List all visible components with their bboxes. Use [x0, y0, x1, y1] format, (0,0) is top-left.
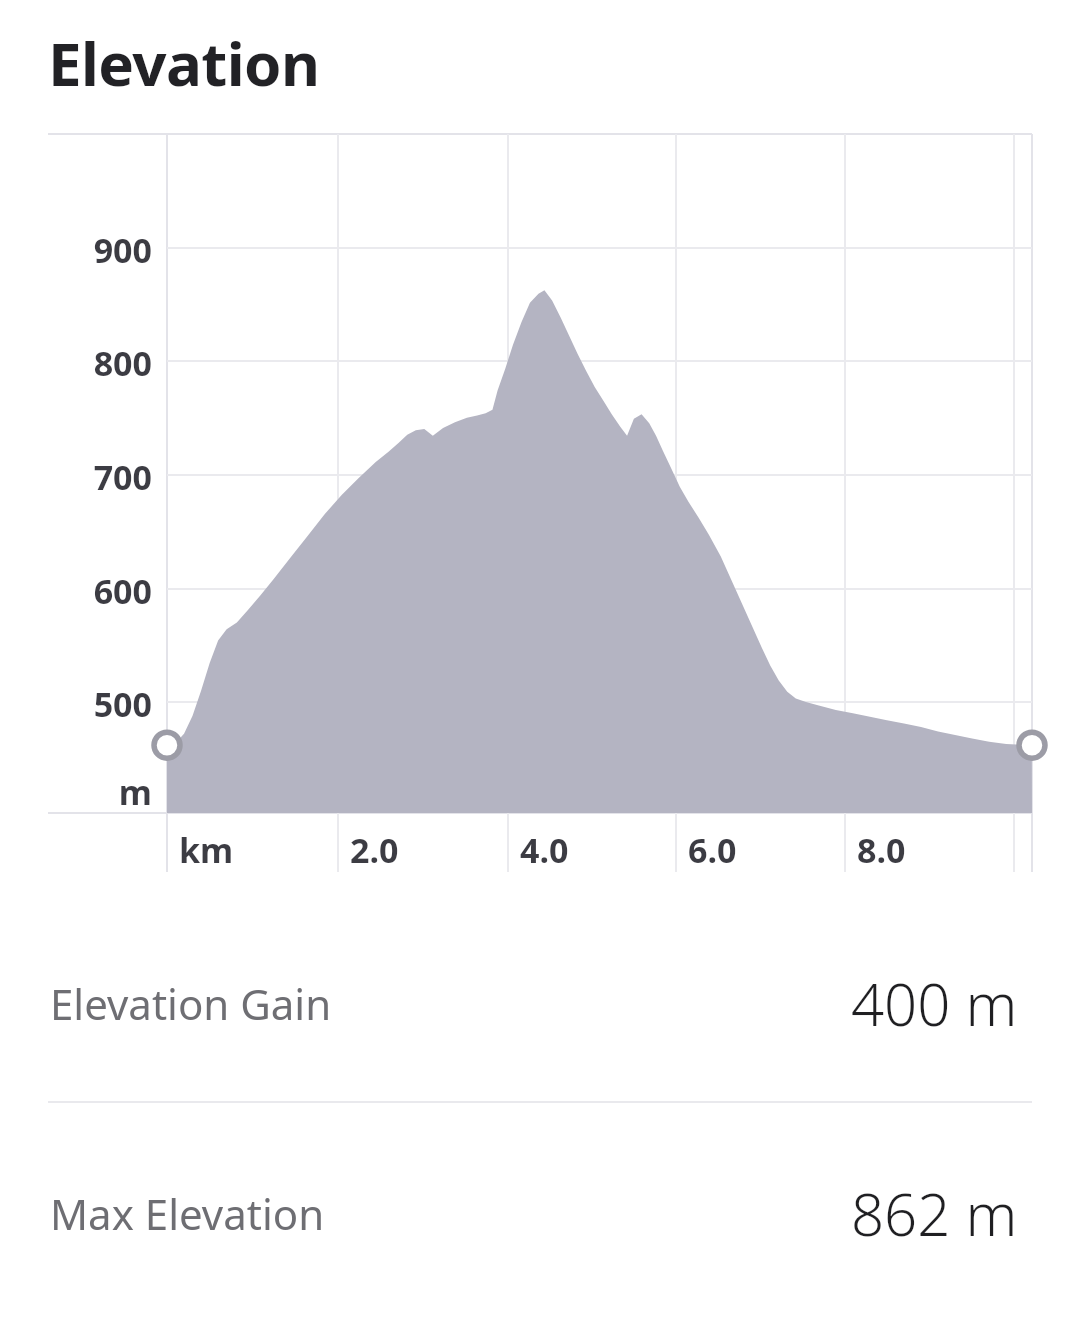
- staticText: Elevation Gain: [50, 975, 332, 1032]
- staticText: 900: [93, 227, 152, 273]
- staticText: 6.0: [688, 827, 737, 873]
- staticText: 800: [93, 340, 152, 386]
- staticText: 700: [93, 454, 152, 500]
- button[interactable]: Max Elevation: [0, 1103, 1080, 1323]
- staticText: 8.0: [857, 827, 906, 873]
- staticText: Elevation: [48, 22, 320, 104]
- staticText: 600: [93, 568, 152, 614]
- staticText: 500: [93, 681, 152, 727]
- staticText: 400 m: [851, 964, 1018, 1043]
- staticText: m: [118, 769, 152, 815]
- staticText: 2.0: [350, 827, 399, 873]
- button[interactable]: Elevation Gain: [0, 905, 1080, 1101]
- staticText: 4.0: [520, 827, 569, 873]
- staticText: Max Elevation: [50, 1185, 325, 1242]
- staticText: km: [179, 827, 234, 873]
- staticText: 862 m: [851, 1174, 1018, 1253]
